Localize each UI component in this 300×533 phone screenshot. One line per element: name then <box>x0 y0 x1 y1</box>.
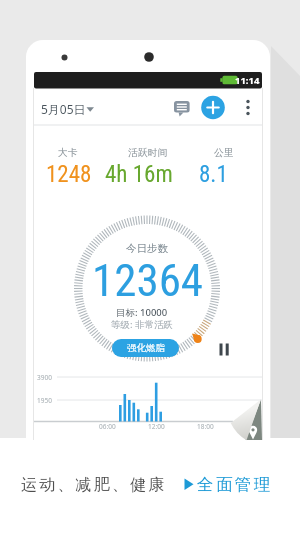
staticText: 1248 <box>46 161 92 184</box>
staticText: 5月05日 <box>41 101 86 117</box>
button[interactable] <box>170 96 194 120</box>
staticText: 12364 <box>92 254 204 302</box>
button[interactable] <box>238 96 258 120</box>
staticText: 目标: 10000 <box>116 306 168 317</box>
staticText: 1950 <box>37 396 52 405</box>
staticText: 全面管理 <box>197 474 273 495</box>
staticText: 3900 <box>37 373 52 382</box>
button[interactable] <box>201 96 225 120</box>
staticText: 运动、减肥、健康 <box>21 475 167 495</box>
staticText: 强化燃脂 <box>127 342 165 354</box>
staticText: 等级: 非常活跃 <box>111 318 174 329</box>
button[interactable]: 强化燃脂 <box>112 339 179 357</box>
staticText: 4h 16m <box>105 161 173 184</box>
button[interactable] <box>215 340 233 358</box>
staticText: 06:00 <box>99 422 116 431</box>
button[interactable]: 5月05日 <box>41 92 101 126</box>
staticText: 活跃时间 <box>128 147 168 158</box>
staticText: 大卡 <box>58 147 78 158</box>
staticText: 12:00 <box>148 422 165 431</box>
button[interactable]: 全面管理 <box>197 471 287 498</box>
staticText: 18:00 <box>197 422 214 431</box>
staticText: 11:14 <box>235 74 260 87</box>
staticText: 8.1 <box>199 161 228 184</box>
staticText: 公里 <box>214 147 234 158</box>
staticText: 今日步数 <box>126 242 168 253</box>
